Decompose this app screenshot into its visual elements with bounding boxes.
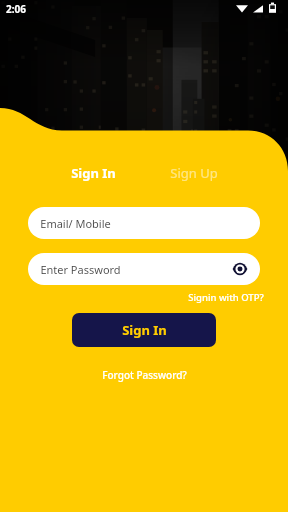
staticText: Sign In bbox=[71, 164, 116, 182]
staticText: Sign Up bbox=[170, 164, 218, 182]
staticText: Signin with OTP? bbox=[188, 291, 264, 304]
button[interactable]: Sign In bbox=[61, 160, 126, 186]
staticText: 2:06 bbox=[6, 2, 26, 16]
button[interactable]: Forgot Password? bbox=[94, 365, 195, 385]
staticText: Email/ Mobile bbox=[40, 216, 111, 231]
button[interactable]: Show password bbox=[228, 257, 252, 281]
button[interactable]: Email/ Mobile bbox=[28, 207, 260, 239]
staticText: Sign In bbox=[122, 321, 167, 339]
staticText: Forgot Password? bbox=[102, 368, 187, 382]
button[interactable]: Signin with OTP? bbox=[188, 291, 264, 304]
staticText: Enter Password bbox=[40, 262, 121, 277]
button[interactable]: Sign In bbox=[72, 313, 216, 347]
button[interactable]: Sign Up bbox=[160, 160, 228, 186]
